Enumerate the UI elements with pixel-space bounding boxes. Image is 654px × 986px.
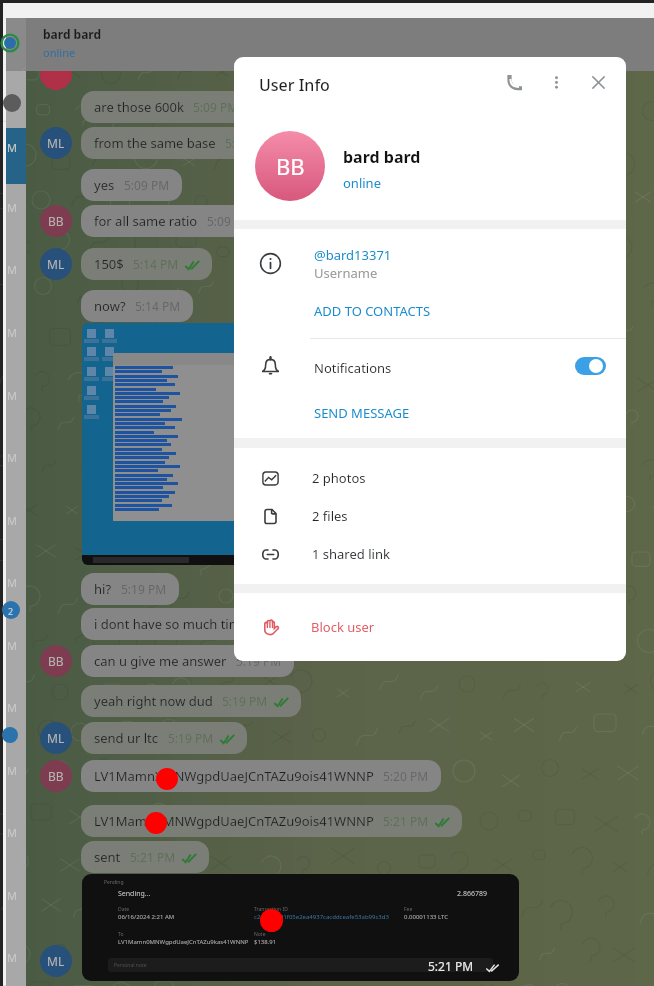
staticText: bard bard <box>343 146 421 168</box>
staticText: SEND MESSAGE <box>314 404 410 422</box>
staticText: M <box>7 763 17 778</box>
staticText: To <box>118 931 124 938</box>
staticText: BB <box>48 213 64 229</box>
staticText: 150$ <box>94 255 124 273</box>
button[interactable]: More options <box>545 71 567 93</box>
staticText: 5:09 PM <box>207 213 253 229</box>
staticText: 5:19 PM <box>236 653 282 669</box>
staticText: M <box>7 200 17 215</box>
staticText: User Info <box>259 74 330 96</box>
staticText: hi? <box>94 580 112 598</box>
button[interactable]: SEND MESSAGE <box>308 400 438 424</box>
staticText: 5:14 PM <box>135 298 181 314</box>
staticText: 5:19 PM <box>168 730 214 746</box>
staticText: 5:19 PM <box>222 693 268 709</box>
staticText: 5:09 PM <box>225 135 271 151</box>
staticText: sent <box>94 848 121 866</box>
staticText: M <box>7 825 17 840</box>
staticText: yeah right now dud <box>94 692 213 710</box>
staticText: ML <box>47 256 65 272</box>
staticText: LV1Mamn0MNWgpdUaeJCnTAZu9kas41WNNP <box>118 938 249 946</box>
staticText: M <box>7 325 17 340</box>
staticText: Date <box>118 906 130 913</box>
staticText: ML <box>47 953 65 969</box>
staticText: M <box>7 950 17 965</box>
staticText: ADD TO CONTACTS <box>314 302 431 320</box>
staticText: Fee <box>404 906 413 913</box>
staticText: 2.866789 <box>457 889 487 899</box>
staticText: ML <box>47 135 65 151</box>
staticText: are those 600k <box>94 98 184 116</box>
staticText: now? <box>94 297 126 315</box>
staticText: i dont have so much tim <box>94 615 241 633</box>
staticText: 5:09 PM <box>124 177 170 193</box>
staticText: ML <box>47 730 65 746</box>
staticText: $138.91 <box>254 938 277 946</box>
button[interactable]: Call <box>503 71 525 93</box>
staticText: M <box>7 888 17 903</box>
button[interactable]: ADD TO CONTACTS <box>308 298 448 322</box>
staticText: 5:20 PM <box>383 768 429 784</box>
staticText: can u give me answer <box>94 652 227 670</box>
button[interactable]: Close <box>587 71 609 93</box>
staticText: 06/16/2024 2:21 AM <box>118 913 175 921</box>
staticText: 5:21 PM <box>428 958 474 974</box>
staticText: Username <box>314 264 378 282</box>
staticText: M <box>7 140 17 155</box>
staticText: Block user <box>311 618 375 636</box>
staticText: Sending... <box>118 889 151 899</box>
staticText: Transaction ID <box>254 906 288 913</box>
staticText: 5:21 PM <box>383 813 429 829</box>
staticText: M <box>7 513 17 528</box>
staticText: 0.00001133 LTC <box>404 913 449 921</box>
staticText: bard bard <box>43 26 102 42</box>
staticText: c24b9fa9d1f05e2ea4937cacddceafe53ab99c3d… <box>254 913 389 921</box>
staticText: 2 photos <box>312 469 366 487</box>
staticText: M <box>7 388 17 403</box>
button[interactable]: 1 shared link <box>234 539 626 569</box>
staticText: 2 <box>8 605 14 617</box>
staticText: send ur ltc <box>94 729 159 747</box>
staticText: LV1MamnXMNWgpdUaeJCnTAZu9ois41WNNP <box>94 767 374 785</box>
staticText: M <box>7 700 17 715</box>
staticText: M <box>7 262 17 277</box>
button[interactable]: Notifications toggle <box>575 357 606 375</box>
staticText: Notifications <box>314 359 392 377</box>
staticText: LV1MamnXMNWgpdUaeJCnTAZu9ois41WNNP <box>94 812 374 830</box>
button[interactable]: 2 photos <box>234 463 626 493</box>
staticText: 2 files <box>312 507 348 525</box>
staticText: M <box>7 450 17 465</box>
staticText: M <box>7 638 17 653</box>
staticText: 5:21 PM <box>130 849 176 865</box>
staticText: BB <box>48 768 64 784</box>
staticText: @bard13371 <box>314 246 392 264</box>
staticText: BB <box>276 151 305 181</box>
staticText: BB <box>48 653 64 669</box>
staticText: for all same ratio <box>94 212 198 230</box>
staticText: Note <box>254 931 266 938</box>
staticText: 5:14 PM <box>133 256 179 272</box>
staticText: 1 shared link <box>312 545 390 563</box>
staticText: Personal note <box>114 962 147 969</box>
staticText: from the same base <box>94 134 216 152</box>
staticText: M <box>7 575 17 590</box>
button[interactable]: 2 files <box>234 501 626 531</box>
staticText: 5:09 PM <box>193 99 239 115</box>
staticText: 5:19 PM <box>121 581 167 597</box>
staticText: yes <box>94 176 115 194</box>
staticText: online <box>43 45 76 60</box>
staticText: Pending <box>104 879 124 886</box>
button[interactable]: Block user <box>234 610 626 644</box>
staticText: online <box>343 174 381 192</box>
